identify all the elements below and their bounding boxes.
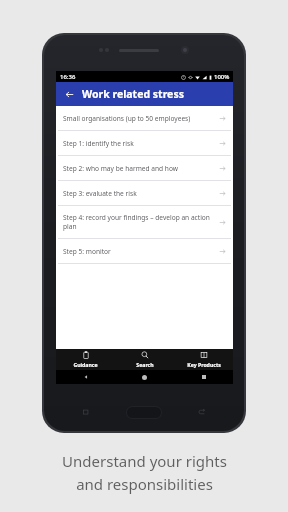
button[interactable]: Back bbox=[61, 86, 77, 102]
staticText: Guidance bbox=[73, 361, 98, 368]
staticText: and responsibilities bbox=[76, 474, 213, 494]
staticText: Understand your rights bbox=[62, 451, 227, 471]
button[interactable]: Home bbox=[115, 370, 174, 384]
button[interactable]: Search bbox=[115, 349, 174, 370]
button[interactable]: Step 5: monitor bbox=[56, 239, 233, 264]
button[interactable]: Key Products bbox=[174, 349, 233, 370]
staticText: Step 1: identify the risk bbox=[63, 139, 213, 148]
button[interactable]: Step 4: record your findings – develop a… bbox=[56, 206, 233, 239]
button[interactable]: Guidance bbox=[56, 349, 115, 370]
staticText: Step 5: monitor bbox=[63, 247, 213, 256]
staticText: Step 3: evaluate the risk bbox=[63, 189, 213, 198]
staticText: 100% bbox=[214, 73, 230, 81]
staticText: Work related stress bbox=[82, 87, 184, 101]
button[interactable]: Back bbox=[56, 370, 115, 384]
staticText: Key Products bbox=[187, 361, 221, 368]
staticText: Search bbox=[136, 361, 154, 368]
button[interactable]: Step 1: identify the risk bbox=[56, 131, 233, 156]
staticText: Step 2: who may be harmed and how bbox=[63, 164, 213, 173]
staticText: Step 4: record your findings – develop a… bbox=[63, 213, 213, 231]
button[interactable]: Small organisations (up to 50 employees) bbox=[56, 106, 233, 131]
staticText: Small organisations (up to 50 employees) bbox=[63, 114, 213, 123]
button[interactable]: Step 3: evaluate the risk bbox=[56, 181, 233, 206]
button[interactable]: Recents bbox=[174, 370, 233, 384]
staticText: 16:36 bbox=[60, 73, 76, 81]
button[interactable]: Step 2: who may be harmed and how bbox=[56, 156, 233, 181]
